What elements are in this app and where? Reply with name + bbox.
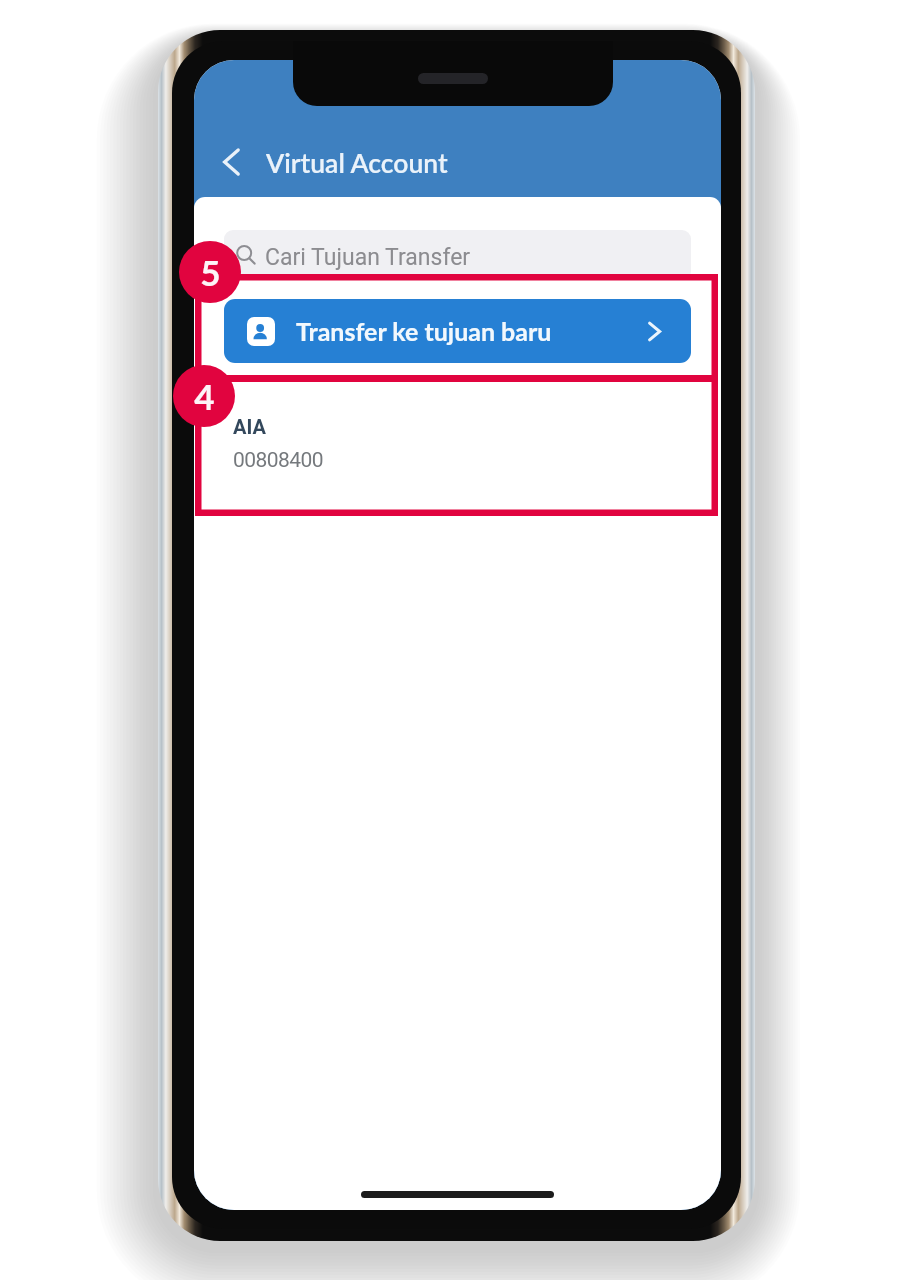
staticText: Cari Tujuan Transfer xyxy=(265,244,471,271)
button[interactable]: Cari Tujuan Transfer xyxy=(224,230,691,280)
staticText: Transfer ke tujuan baru xyxy=(296,316,552,346)
other: Open xyxy=(648,322,661,341)
button[interactable]: Transfer ke tujuan baru xyxy=(224,299,691,363)
staticText: Virtual Account xyxy=(266,147,448,179)
staticText: 00808400 xyxy=(233,448,324,473)
button[interactable]: AIA xyxy=(194,385,721,505)
button[interactable]: Back xyxy=(208,140,253,184)
staticText: 5 xyxy=(200,251,221,293)
staticText: 4 xyxy=(194,375,215,417)
staticText: AIA xyxy=(233,415,266,438)
